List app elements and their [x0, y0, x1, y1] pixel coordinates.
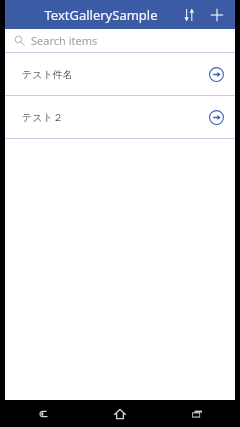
button[interactable]: Open — [209, 67, 224, 82]
button[interactable]: Open — [209, 110, 224, 125]
button[interactable]: Search items — [5, 29, 235, 52]
button[interactable]: テスト２ — [5, 96, 235, 138]
staticText: テスト件名 — [22, 68, 73, 81]
staticText: Search items — [31, 33, 98, 48]
button[interactable]: Add — [203, 1, 231, 29]
button[interactable]: Sort — [175, 1, 203, 29]
staticText: テスト２ — [22, 111, 63, 124]
button[interactable]: Recents — [158, 400, 235, 427]
button[interactable]: Back — [5, 400, 81, 427]
button[interactable]: テスト件名 — [5, 53, 235, 95]
staticText: TextGallerySample — [35, 6, 167, 24]
button[interactable]: Home — [81, 400, 158, 427]
